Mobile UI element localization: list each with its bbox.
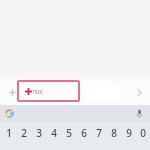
button[interactable]: Send [131,84,147,100]
button[interactable]: 6 [76,122,91,143]
button[interactable]: Add attachment [4,84,20,100]
staticText: 9 [126,126,132,140]
staticText: 1 [6,126,12,140]
staticText: 7926 [32,89,43,95]
staticText: 0 [140,126,146,140]
button[interactable]: Google Search [4,108,15,119]
button[interactable]: Voice input [134,108,145,119]
button[interactable]: 0 [136,122,150,143]
button[interactable]: 3 [31,122,46,143]
button[interactable]: 4 [46,122,61,143]
button[interactable]: 1 [1,122,16,143]
staticText: 4 [51,126,57,140]
button[interactable]: 2 [16,122,31,143]
staticText: 8 [111,126,117,140]
staticText: 2 [21,126,27,140]
staticText: 5 [66,126,72,140]
button[interactable]: 7 [91,122,106,143]
staticText: 3 [36,126,42,140]
button[interactable]: 5 [61,122,76,143]
button[interactable]: 8 [106,122,121,143]
staticText: 7 [96,126,102,140]
staticText: 6 [81,126,87,140]
button[interactable]: 9 [121,122,136,143]
button[interactable]: 7926 [17,80,80,102]
